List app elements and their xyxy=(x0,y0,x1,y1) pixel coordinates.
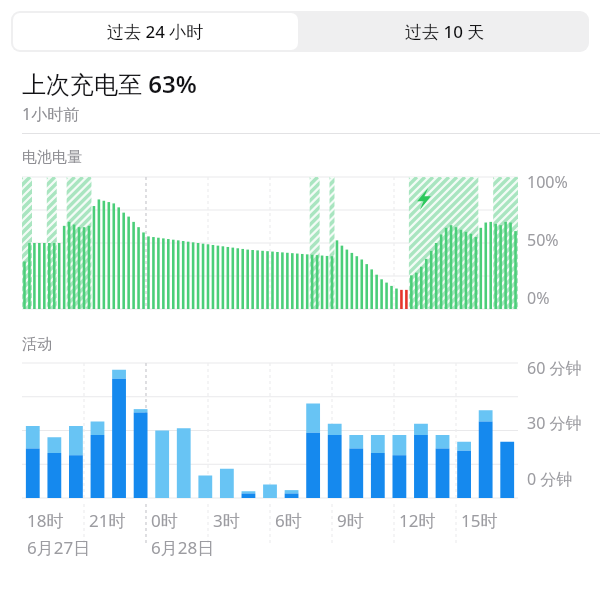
staticText: 12时 xyxy=(399,509,436,532)
staticText: 15时 xyxy=(461,509,498,532)
button[interactable]: 过去 10 天 xyxy=(300,11,589,52)
staticText: 30 分钟 xyxy=(527,412,582,434)
staticText: 上次充电至 63% xyxy=(22,67,197,100)
staticText: 1小时前 xyxy=(22,103,80,125)
staticText: 电池电量 xyxy=(22,148,82,167)
staticText: 6月28日 xyxy=(151,536,215,559)
staticText: 3时 xyxy=(213,509,240,532)
staticText: 6时 xyxy=(275,509,302,532)
staticText: 50% xyxy=(527,229,559,251)
staticText: 过去 10 天 xyxy=(405,20,485,43)
staticText: 0% xyxy=(527,287,550,309)
staticText: 60 分钟 xyxy=(527,357,582,379)
staticText: 9时 xyxy=(337,509,364,532)
staticText: 活动 xyxy=(22,335,52,354)
staticText: 100% xyxy=(527,171,568,193)
staticText: 0时 xyxy=(151,509,178,532)
staticText: 18时 xyxy=(27,509,64,532)
staticText: 0 分钟 xyxy=(527,468,573,490)
staticText: 6月27日 xyxy=(27,536,91,559)
staticText: 过去 24 小时 xyxy=(107,20,204,43)
staticText: 21时 xyxy=(89,509,126,532)
button[interactable]: 过去 24 小时 xyxy=(13,13,298,50)
